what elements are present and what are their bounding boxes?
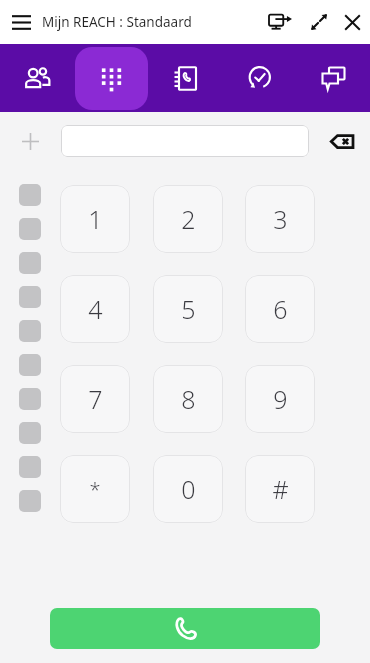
button[interactable]: Messages (296, 44, 370, 112)
button[interactable]: 5 (153, 275, 223, 343)
staticText: 2 (181, 202, 196, 236)
staticText: 0 (181, 472, 196, 506)
button[interactable]: # (245, 455, 315, 523)
button[interactable]: Menu (0, 0, 42, 44)
button[interactable]: Call (50, 608, 320, 649)
staticText: 1 (88, 202, 103, 236)
staticText: * (89, 476, 101, 503)
button[interactable]: 9 (245, 365, 315, 433)
button[interactable]: Call history (222, 44, 296, 112)
button[interactable]: 7 (60, 365, 130, 433)
button[interactable]: Line 5 (19, 320, 41, 342)
button[interactable]: Line 9 (19, 456, 41, 478)
button[interactable]: Line 7 (19, 388, 41, 410)
staticText: 4 (88, 292, 103, 326)
button[interactable]: Line 2 (19, 218, 41, 240)
staticText: 3 (273, 202, 288, 236)
button[interactable]: 4 (60, 275, 130, 343)
button[interactable]: Line 1 (19, 184, 41, 206)
button[interactable]: 6 (245, 275, 315, 343)
button[interactable]: Line 10 (19, 490, 41, 512)
button[interactable]: 3 (245, 185, 315, 253)
button[interactable]: * (60, 455, 130, 523)
button[interactable]: Contacts (0, 44, 74, 112)
staticText: 9 (273, 382, 288, 416)
staticText: # (272, 472, 289, 506)
staticText: Mijn REACH : Standaard (42, 13, 192, 31)
button[interactable]: 8 (153, 365, 223, 433)
button[interactable]: Minimize (303, 0, 334, 44)
button[interactable]: Line 4 (19, 286, 41, 308)
button[interactable]: Close (334, 0, 370, 44)
button[interactable]: Phone book (148, 44, 222, 112)
button[interactable]: 2 (153, 185, 223, 253)
button[interactable]: Line 3 (19, 252, 41, 274)
button[interactable]: 0 (153, 455, 223, 523)
button[interactable]: Line 6 (19, 354, 41, 376)
button[interactable]: Line 8 (19, 422, 41, 444)
staticText: 5 (181, 292, 196, 326)
button[interactable]: Add contact (0, 125, 61, 157)
staticText: 6 (273, 292, 288, 326)
button[interactable]: Dialpad (74, 44, 148, 112)
button[interactable]: 1 (60, 185, 130, 253)
button[interactable]: Backspace (322, 125, 362, 157)
button[interactable]: Present screen (257, 0, 303, 44)
button[interactable]: Phone number field (61, 125, 309, 157)
staticText: 8 (181, 382, 196, 416)
staticText: 7 (88, 382, 103, 416)
